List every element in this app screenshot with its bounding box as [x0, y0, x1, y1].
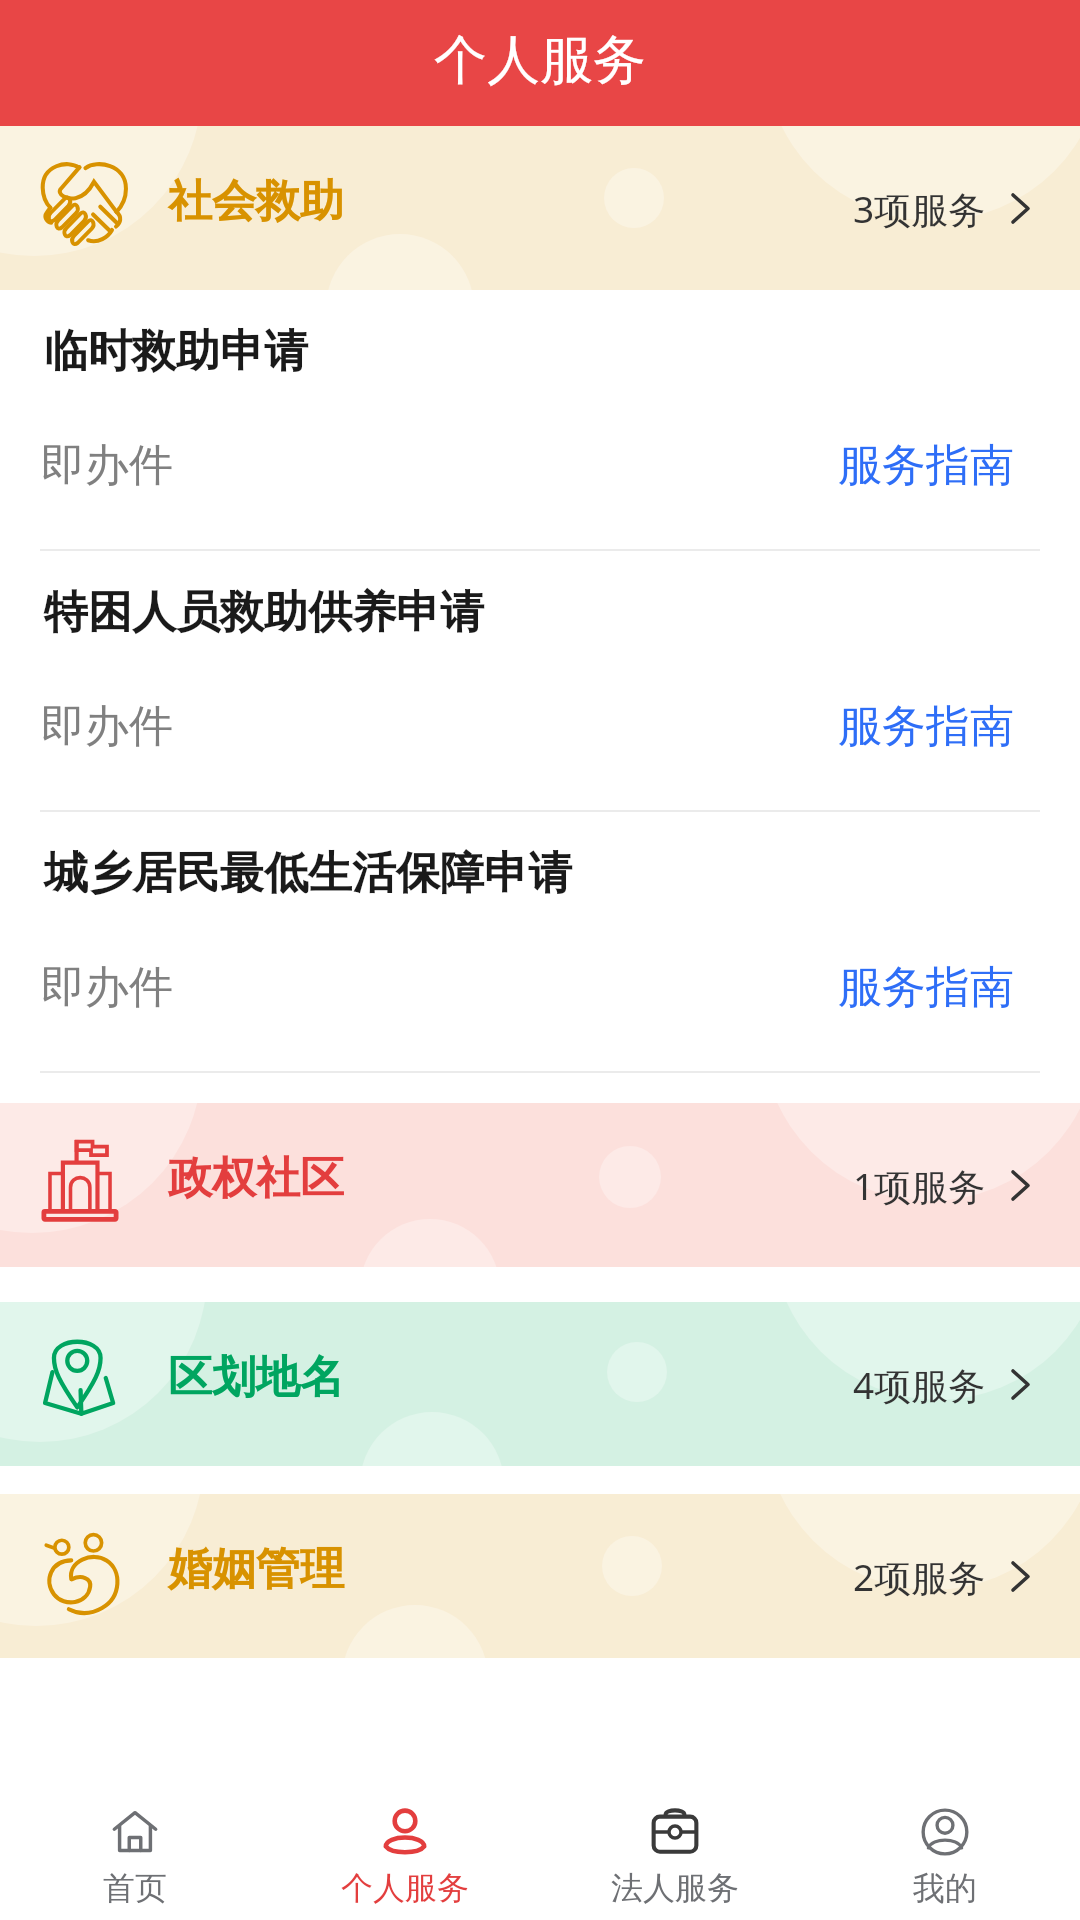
staticText: 临时救助申请	[44, 324, 308, 379]
button[interactable]: 服务指南	[838, 438, 1014, 493]
staticText: 服务指南	[838, 699, 1014, 754]
button[interactable]: 服务指南	[838, 960, 1014, 1015]
button[interactable]: 首页	[0, 1790, 270, 1908]
staticText: 城乡居民最低生活保障申请	[44, 846, 572, 901]
staticText: 社会救助	[168, 174, 344, 229]
staticText: 服务指南	[838, 960, 1014, 1015]
button[interactable]: 个人服务	[270, 1790, 540, 1908]
button[interactable]: 我的	[810, 1790, 1080, 1908]
staticText: 法人服务	[611, 1868, 739, 1908]
staticText: 特困人员救助供养申请	[44, 585, 484, 640]
staticText: 个人服务	[434, 27, 646, 94]
staticText: 即办件	[41, 438, 173, 493]
other: 个人服务	[381, 1808, 429, 1856]
staticText: 婚姻管理	[168, 1542, 344, 1597]
button[interactable]: 城乡居民最低生活保障申请	[0, 812, 1080, 1073]
button[interactable]: 婚姻管理	[0, 1494, 1080, 1658]
staticText: 个人服务	[341, 1868, 469, 1908]
staticText: 我的	[913, 1868, 977, 1908]
staticText: 政权社区	[168, 1151, 344, 1206]
staticText: 即办件	[41, 960, 173, 1015]
other: 法人服务	[651, 1808, 699, 1856]
button[interactable]: 特困人员救助供养申请	[0, 551, 1080, 812]
staticText: 3项服务	[853, 183, 986, 234]
staticText: 2项服务	[853, 1551, 986, 1602]
other: 首页	[112, 1809, 158, 1855]
button[interactable]: 社会救助	[0, 126, 1080, 290]
button[interactable]: 政权社区	[0, 1103, 1080, 1267]
staticText: 首页	[103, 1868, 167, 1908]
button[interactable]: 服务指南	[838, 699, 1014, 754]
staticText: 1项服务	[853, 1160, 986, 1211]
staticText: 区划地名	[168, 1350, 344, 1405]
button[interactable]: 临时救助申请	[0, 290, 1080, 551]
staticText: 服务指南	[838, 438, 1014, 493]
staticText: 即办件	[41, 699, 173, 754]
staticText: 4项服务	[853, 1359, 986, 1410]
button[interactable]: 法人服务	[540, 1790, 810, 1908]
other: 我的	[921, 1808, 969, 1856]
button[interactable]: 区划地名	[0, 1302, 1080, 1466]
